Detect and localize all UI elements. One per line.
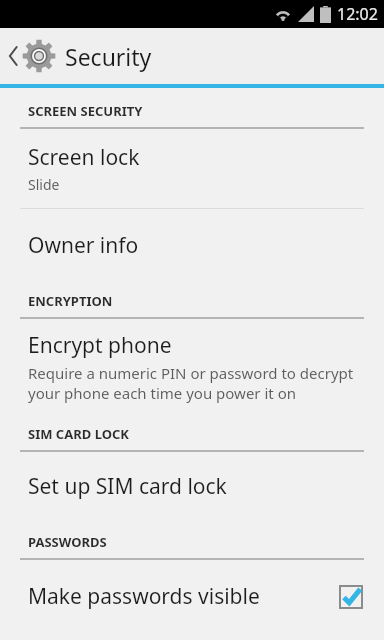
staticText: Encrypt phone	[28, 331, 172, 360]
staticText: Set up SIM card lock	[28, 472, 227, 501]
staticText: 12:02	[337, 3, 378, 25]
staticText: SCREEN SECURITY	[28, 102, 143, 120]
button[interactable]: Encrypt phone	[0, 319, 384, 413]
button[interactable]: Owner info	[0, 209, 384, 282]
button[interactable]: Make passwords visible	[0, 560, 384, 629]
staticText: Require a numeric PIN or password to dec…	[28, 363, 364, 403]
staticText: Owner info	[28, 231, 139, 260]
button[interactable]: Screen lock	[0, 129, 384, 208]
button[interactable]: Navigate up, Security	[0, 28, 384, 84]
staticText: Slide	[28, 175, 60, 194]
staticText: Security	[65, 41, 152, 72]
staticText: PASSWORDS	[28, 533, 107, 551]
button[interactable]: Set up SIM card lock	[0, 452, 384, 521]
staticText: ENCRYPTION	[28, 292, 113, 310]
staticText: SIM CARD LOCK	[28, 425, 129, 443]
staticText: Make passwords visible	[28, 582, 340, 611]
staticText: Screen lock	[28, 143, 140, 172]
